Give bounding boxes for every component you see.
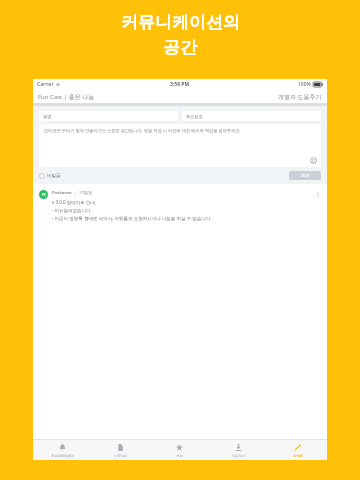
staticText: 비밀글 xyxy=(47,173,61,179)
staticText: 인터넷은 우리가 함께 만들어가는 소중한 공간입니다. 댓글 작성 시 타인에… xyxy=(44,128,241,134)
staticText: – xyxy=(74,190,77,196)
staticText: 추천 xyxy=(176,454,183,458)
button[interactable]: Fun Cast | 좋은 나눔 xyxy=(38,93,95,101)
button[interactable]: 인터넷은 우리가 함께 만들어가는 소중한 공간입니다. 댓글 작성 시 타인에… xyxy=(39,124,321,167)
staticText: 필명 xyxy=(43,114,52,119)
button[interactable]: 확인번호 xyxy=(182,111,321,121)
staticText: 확인번호 xyxy=(186,114,203,119)
button[interactable]: 나의Cast xyxy=(91,440,150,460)
button[interactable]: 추천 xyxy=(150,440,209,460)
staticText: Carrier xyxy=(37,81,54,88)
staticText: - 이곳이 방명록 형태로 되어서, 자유롭게 요청하시거나 나눔을 하실 수 … xyxy=(52,215,212,221)
button[interactable]: 개발자 도움주기 xyxy=(278,93,322,101)
staticText: 17일전 xyxy=(79,190,93,196)
button[interactable]: 필명 xyxy=(39,111,178,121)
staticText: 나의Cast xyxy=(114,454,127,458)
staticText: 다운로드 xyxy=(232,454,245,458)
staticText: - 리뉴얼되었습니다. xyxy=(52,207,92,213)
button[interactable]: 다운로드 xyxy=(209,440,268,460)
button[interactable]: 쓰기 xyxy=(289,171,321,180)
staticText: Fun Cast | 좋은 나눔 xyxy=(38,93,95,101)
button[interactable]: 비밀글 xyxy=(39,173,61,179)
staticText: 회원방명록참여 xyxy=(51,454,74,458)
button[interactable]: 이모티콘 xyxy=(310,157,317,164)
button[interactable]: 방명록 xyxy=(268,440,327,460)
staticText: 공간 xyxy=(163,37,197,58)
staticText: 3:56 PM xyxy=(170,81,190,88)
button[interactable]: 더보기 xyxy=(315,190,321,199)
staticText: 쓰기 xyxy=(301,173,310,179)
staticText: FC xyxy=(42,193,46,197)
staticText: Podcaster xyxy=(52,190,72,196)
staticText: 개발자 도움주기 xyxy=(278,93,322,101)
staticText: 커뮤니케이션의 xyxy=(121,12,240,33)
button[interactable]: 회원방명록참여 xyxy=(33,440,91,460)
staticText: 방명록 xyxy=(293,454,303,458)
staticText: 100% xyxy=(298,81,311,88)
staticText: v 3.0.0 업데이트 안내 xyxy=(52,199,95,205)
